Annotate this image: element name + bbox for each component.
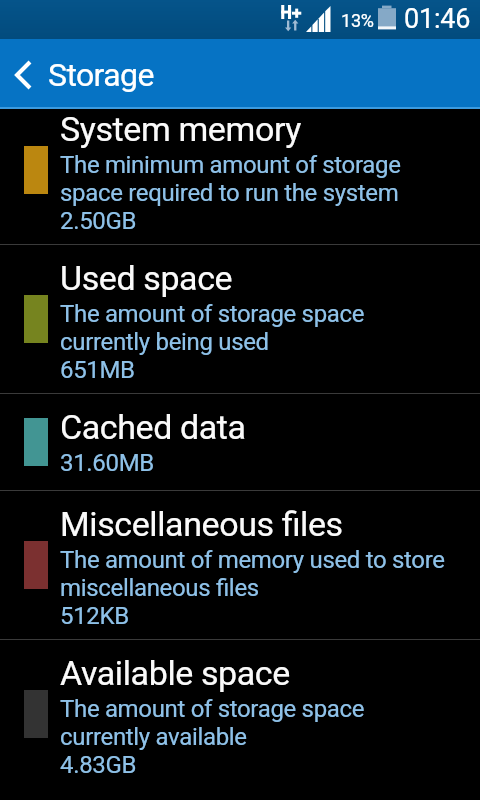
- staticText: 01:46: [404, 3, 471, 35]
- staticText: currently available: [60, 723, 247, 751]
- button[interactable]: Cached data: [0, 394, 480, 490]
- staticText: 31.60MB: [60, 449, 154, 477]
- button[interactable]: Available space: [0, 640, 480, 787]
- staticText: Storage: [48, 56, 154, 94]
- staticText: 4.83GB: [60, 751, 137, 779]
- button[interactable]: Miscellaneous files: [0, 491, 480, 639]
- other: Signal strength: [306, 6, 331, 32]
- staticText: Used space: [60, 258, 233, 298]
- staticText: Available space: [60, 653, 290, 693]
- staticText: 13%: [341, 10, 374, 31]
- staticText: currently being used: [60, 328, 269, 356]
- staticText: 2.50GB: [60, 207, 137, 235]
- staticText: The amount of storage space: [60, 695, 365, 723]
- other: HSPA+ mobile data: [280, 3, 301, 32]
- staticText: The amount of storage space: [60, 300, 365, 328]
- staticText: miscellaneous files: [60, 574, 259, 602]
- staticText: The minimum amount of storage: [60, 151, 401, 179]
- staticText: space required to run the system: [60, 179, 399, 207]
- staticText: Miscellaneous files: [60, 504, 343, 544]
- button[interactable]: Storage: [48, 39, 228, 107]
- staticText: The amount of memory used to store: [60, 546, 445, 574]
- staticText: System memory: [60, 109, 301, 149]
- button[interactable]: Navigate up: [0, 39, 48, 107]
- button[interactable]: System memory: [0, 96, 480, 244]
- button[interactable]: Used space: [0, 245, 480, 393]
- staticText: 651MB: [60, 356, 135, 384]
- staticText: Cached data: [60, 407, 246, 447]
- other: Battery 13 percent: [378, 5, 396, 30]
- staticText: 512KB: [60, 602, 129, 630]
